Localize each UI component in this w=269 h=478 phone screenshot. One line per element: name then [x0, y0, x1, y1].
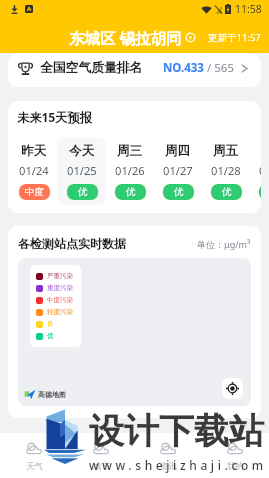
staticText: 01/24 — [19, 163, 49, 178]
staticText: 资讯 — [160, 461, 177, 472]
button[interactable]: 周五 — [202, 138, 250, 205]
staticText: 优 — [78, 186, 88, 198]
button[interactable]: 昨天 — [10, 138, 58, 205]
staticText: www.shejizhaji.com — [89, 457, 267, 473]
staticText: 今天 — [69, 143, 95, 159]
staticText: 设计下载站 — [89, 409, 264, 453]
staticText: 11:58 — [235, 2, 262, 16]
staticText: 严重污染 — [47, 272, 73, 280]
staticText: A — [27, 5, 32, 13]
staticText: 中度 — [25, 186, 44, 198]
staticText: 优 — [174, 186, 184, 198]
button[interactable]: 周四 — [154, 138, 202, 205]
staticText: 周三 — [117, 143, 143, 159]
button[interactable]: 全国空气质量排名 — [8, 53, 261, 87]
staticText: 各检测站点实时数据 — [18, 236, 126, 251]
staticText: 优 — [126, 186, 136, 198]
staticText: 东城区 锡拉胡同 — [69, 27, 182, 48]
staticText: 轻度污染 — [47, 308, 73, 316]
staticText: 01/29 — [259, 163, 261, 178]
button[interactable]: 天气 — [0, 440, 68, 472]
staticText: 天气 — [26, 461, 43, 472]
button[interactable]: 周三 — [106, 138, 154, 205]
staticText: 更新于11:57 — [208, 31, 261, 44]
staticText: / 565 — [204, 60, 234, 76]
button[interactable]: Locate — [222, 378, 243, 399]
staticText: 全国空气质量排名 — [40, 60, 143, 76]
staticText: 01/28 — [211, 163, 241, 178]
staticText: 优 — [47, 332, 54, 340]
staticText: 中度污染 — [47, 296, 73, 304]
staticText: 01/27 — [163, 163, 193, 178]
staticText: 昨天 — [21, 143, 47, 159]
button[interactable]: 城市 — [68, 440, 135, 472]
button[interactable]: 我的 — [202, 440, 269, 472]
staticText: 周五 — [213, 143, 239, 159]
staticText: NO.433 — [163, 60, 204, 76]
staticText: 城市 — [93, 461, 110, 472]
staticText: 我的 — [227, 461, 244, 472]
staticText: 单位：μg/m³ — [197, 238, 251, 250]
staticText: 未来15天预报 — [17, 109, 92, 126]
staticText: 周四 — [165, 143, 191, 159]
staticText: 01/25 — [67, 163, 97, 178]
button[interactable]: 资讯 — [135, 440, 202, 472]
button[interactable]: 今天 — [58, 138, 106, 205]
staticText: 良 — [47, 320, 54, 328]
staticText: 优 — [222, 186, 232, 198]
button[interactable]: 周六 — [250, 138, 261, 205]
staticText: 高德地图 — [38, 390, 66, 399]
staticText: 重度污染 — [47, 284, 73, 292]
staticText: 01/26 — [115, 163, 145, 178]
